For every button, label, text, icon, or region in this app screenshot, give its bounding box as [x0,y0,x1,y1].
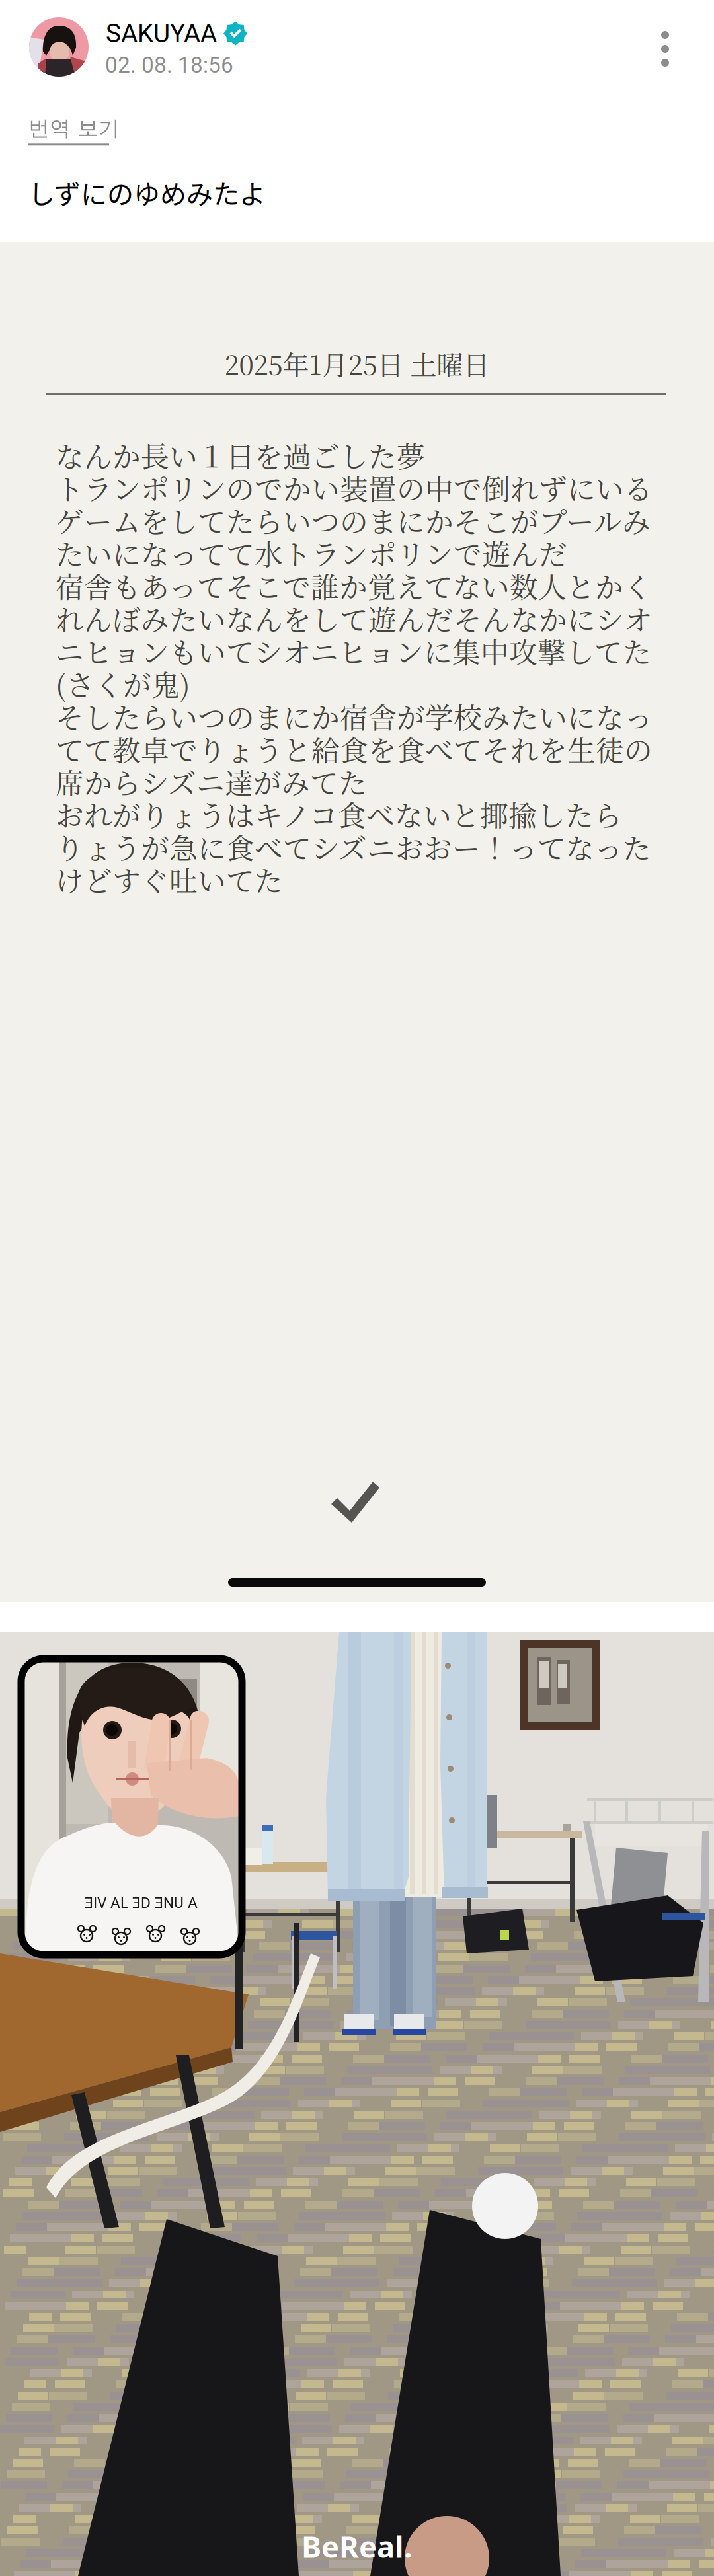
button[interactable]: 번역 보기 [27,114,121,147]
staticText: (さくが鬼) [56,663,190,704]
button[interactable]: More options [633,5,697,93]
staticText: ゲームをしてたらいつのまにかそこがプールみ [56,500,651,541]
staticText: けどすぐ吐いてた [56,859,283,900]
staticText: なんか長い１日を過ごした夢 [56,435,425,475]
staticText: SAKUYAA [106,19,217,48]
staticText: トランポリンのでかい装置の中で倒れずにいる [56,467,653,508]
staticText: たいになってて水トランポリンで遊んだ [56,533,567,573]
staticText: 2025年1月25日 土曜日 [224,345,490,383]
staticText: おれがりょうはキノコ食べないと揶揄したら [56,794,622,834]
staticText: しずにのゆめみたよ [28,173,266,211]
staticText: ニヒョンもいてシオニヒョンに集中攻撃してた [56,631,651,671]
staticText: ƎIV AL ƎD ƎNU A [85,1894,198,1912]
staticText: 번역 보기 [28,115,120,142]
staticText: れんぼみたいなんをして遊んだそんなかにシオ [56,598,653,639]
staticText: りょうが急に食べてシズニおおー！ってなった [56,827,651,867]
staticText: 席からシズニ達がみてた [56,761,367,802]
staticText: BeReal. [301,2526,413,2566]
staticText: てて教卓でりょうと給食を食べてそれを生徒の [56,729,653,769]
staticText: 02. 08. 18:56 [105,52,233,78]
staticText: 宿舎もあってそこで誰か覚えてない数人とかく [56,565,652,606]
staticText: そしたらいつのまにか宿舎が学校みたいになっ [56,696,653,737]
